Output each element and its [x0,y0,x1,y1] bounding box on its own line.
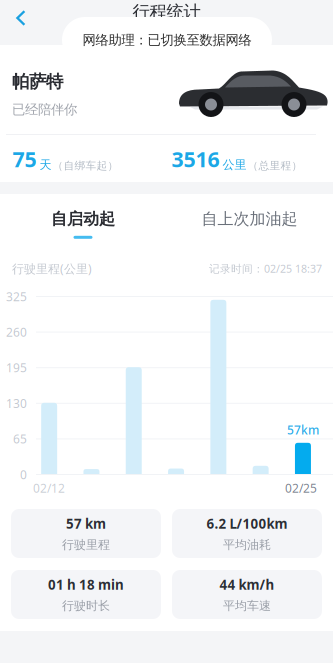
staticText: 6.2 L/100km [206,515,287,532]
button[interactable]: 6.2 L/100km [172,509,322,558]
button[interactable]: 01 h 18 min [11,570,161,619]
staticText: 记录时间：02/25 18:37 [209,261,322,276]
staticText: 行程统计 [132,1,200,23]
staticText: 天 [39,157,51,172]
staticText: 3516 [171,145,219,173]
staticText: 195 [6,360,27,376]
staticText: （总里程） [247,159,302,172]
button[interactable]: 自上次加油起 [166,189,333,249]
staticText: 行驶里程 [62,537,110,552]
button[interactable]: 57 km [11,509,161,558]
staticText: 57km [287,422,319,438]
staticText: 自启动起 [51,209,115,229]
staticText: 65 [13,431,27,447]
staticText: 02/12 [33,480,65,496]
staticText: 已经陪伴你 [12,101,77,118]
button[interactable]: 自启动起 [0,189,166,249]
button[interactable]: 44 km/h [172,570,322,619]
staticText: 行驶里程(公里) [12,260,92,276]
staticText: 44 km/h [219,576,274,593]
staticText: 02/25 [285,480,317,496]
staticText: （自绑车起） [52,159,118,172]
staticText: 57 km [66,515,106,532]
staticText: 自上次加油起 [201,209,297,229]
staticText: 130 [6,395,27,411]
staticText: 260 [6,324,27,340]
staticText: 公里 [222,157,246,172]
staticText: 325 [6,288,27,304]
staticText: 01 h 18 min [48,576,124,593]
staticText: 帕萨特 [12,71,63,92]
button[interactable]: Back [0,0,42,36]
staticText: 平均车速 [223,598,271,613]
staticText: 0 [20,466,27,482]
staticText: 行驶时长 [62,598,110,613]
staticText: 平均油耗 [223,537,271,552]
staticText: 75 [12,145,36,173]
staticText: 网络助理：已切换至数据网络 [82,32,251,48]
